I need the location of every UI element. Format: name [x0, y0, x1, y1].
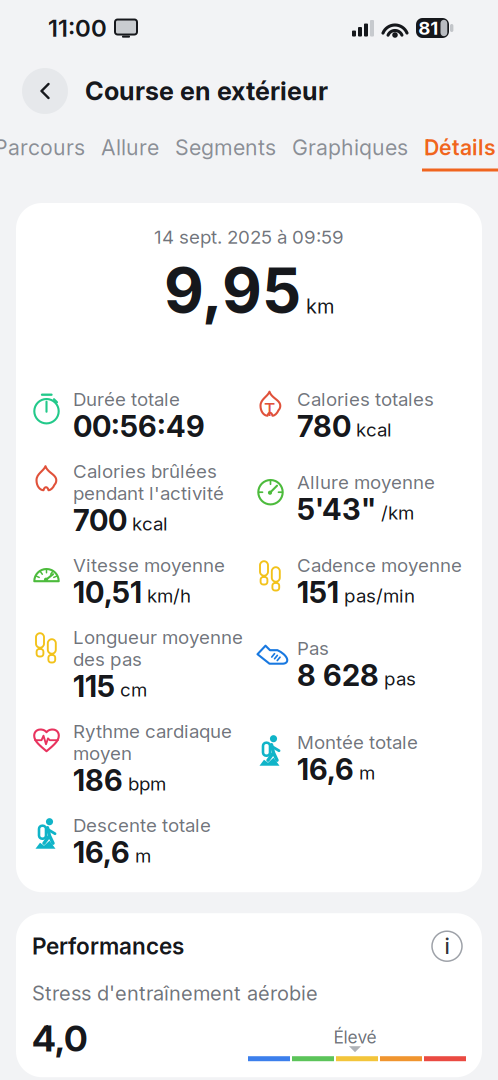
staticText: Calories totales: [297, 388, 434, 410]
staticText: 9,95: [164, 253, 301, 327]
staticText: moyen: [73, 742, 132, 764]
staticText: pendant l'activité: [73, 482, 224, 504]
button[interactable]: Informations sur les performances: [428, 927, 466, 965]
staticText: 00:56:49: [73, 408, 205, 444]
staticText: 16,6: [297, 751, 354, 787]
staticText: cm: [120, 678, 147, 701]
staticText: km/h: [147, 584, 191, 607]
staticText: 5'43": [297, 491, 376, 527]
staticText: des pas: [73, 648, 142, 670]
button[interactable]: Détails: [416, 129, 498, 177]
staticText: Segments: [175, 135, 276, 160]
staticText: /km: [381, 501, 414, 524]
staticText: km: [306, 294, 334, 318]
staticText: 151: [297, 574, 339, 610]
button[interactable]: Graphiques: [284, 129, 416, 177]
staticText: 4,0: [32, 1017, 88, 1060]
staticText: T: [264, 399, 275, 420]
staticText: Montée totale: [297, 731, 418, 753]
staticText: Cadence moyenne: [297, 554, 462, 576]
staticText: Allure: [101, 135, 159, 160]
staticText: Pas: [297, 637, 329, 659]
staticText: Élevé: [333, 1027, 376, 1048]
staticText: Calories brûlées: [73, 460, 217, 482]
staticText: 115: [73, 668, 115, 704]
staticText: 8 628: [297, 657, 379, 693]
button[interactable]: Allure: [93, 129, 167, 177]
staticText: kcal: [132, 512, 168, 535]
staticText: 16,6: [73, 834, 130, 870]
staticText: pas: [384, 667, 416, 690]
staticText: Durée totale: [73, 388, 180, 410]
staticText: Rythme cardiaque: [73, 720, 232, 742]
staticText: Stress d'entraînement aérobie: [32, 981, 318, 1005]
button[interactable]: Segments: [167, 129, 284, 177]
staticText: Parcours: [0, 135, 85, 160]
staticText: m: [359, 761, 375, 784]
staticText: m: [135, 844, 151, 867]
staticText: Descente totale: [73, 814, 211, 836]
button[interactable]: Retour: [22, 68, 68, 114]
staticText: 81: [418, 17, 438, 39]
staticText: kcal: [356, 418, 392, 441]
button[interactable]: Parcours: [0, 129, 93, 177]
staticText: 10,51: [73, 574, 142, 610]
staticText: Performances: [32, 932, 184, 960]
staticText: Course en extérieur: [85, 76, 328, 106]
staticText: 186: [73, 762, 123, 798]
staticText: pas/min: [344, 584, 415, 607]
staticText: i: [444, 933, 449, 959]
staticText: 780: [297, 408, 351, 444]
staticText: Longueur moyenne: [73, 626, 243, 648]
staticText: Vitesse moyenne: [73, 554, 225, 576]
staticText: 11:00: [48, 13, 107, 42]
staticText: 14 sept. 2025 à 09:59: [154, 226, 344, 248]
staticText: Allure moyenne: [297, 471, 435, 493]
staticText: Détails: [424, 135, 496, 160]
staticText: 700: [73, 502, 127, 538]
staticText: Graphiques: [292, 135, 408, 160]
staticText: bpm: [128, 772, 166, 795]
